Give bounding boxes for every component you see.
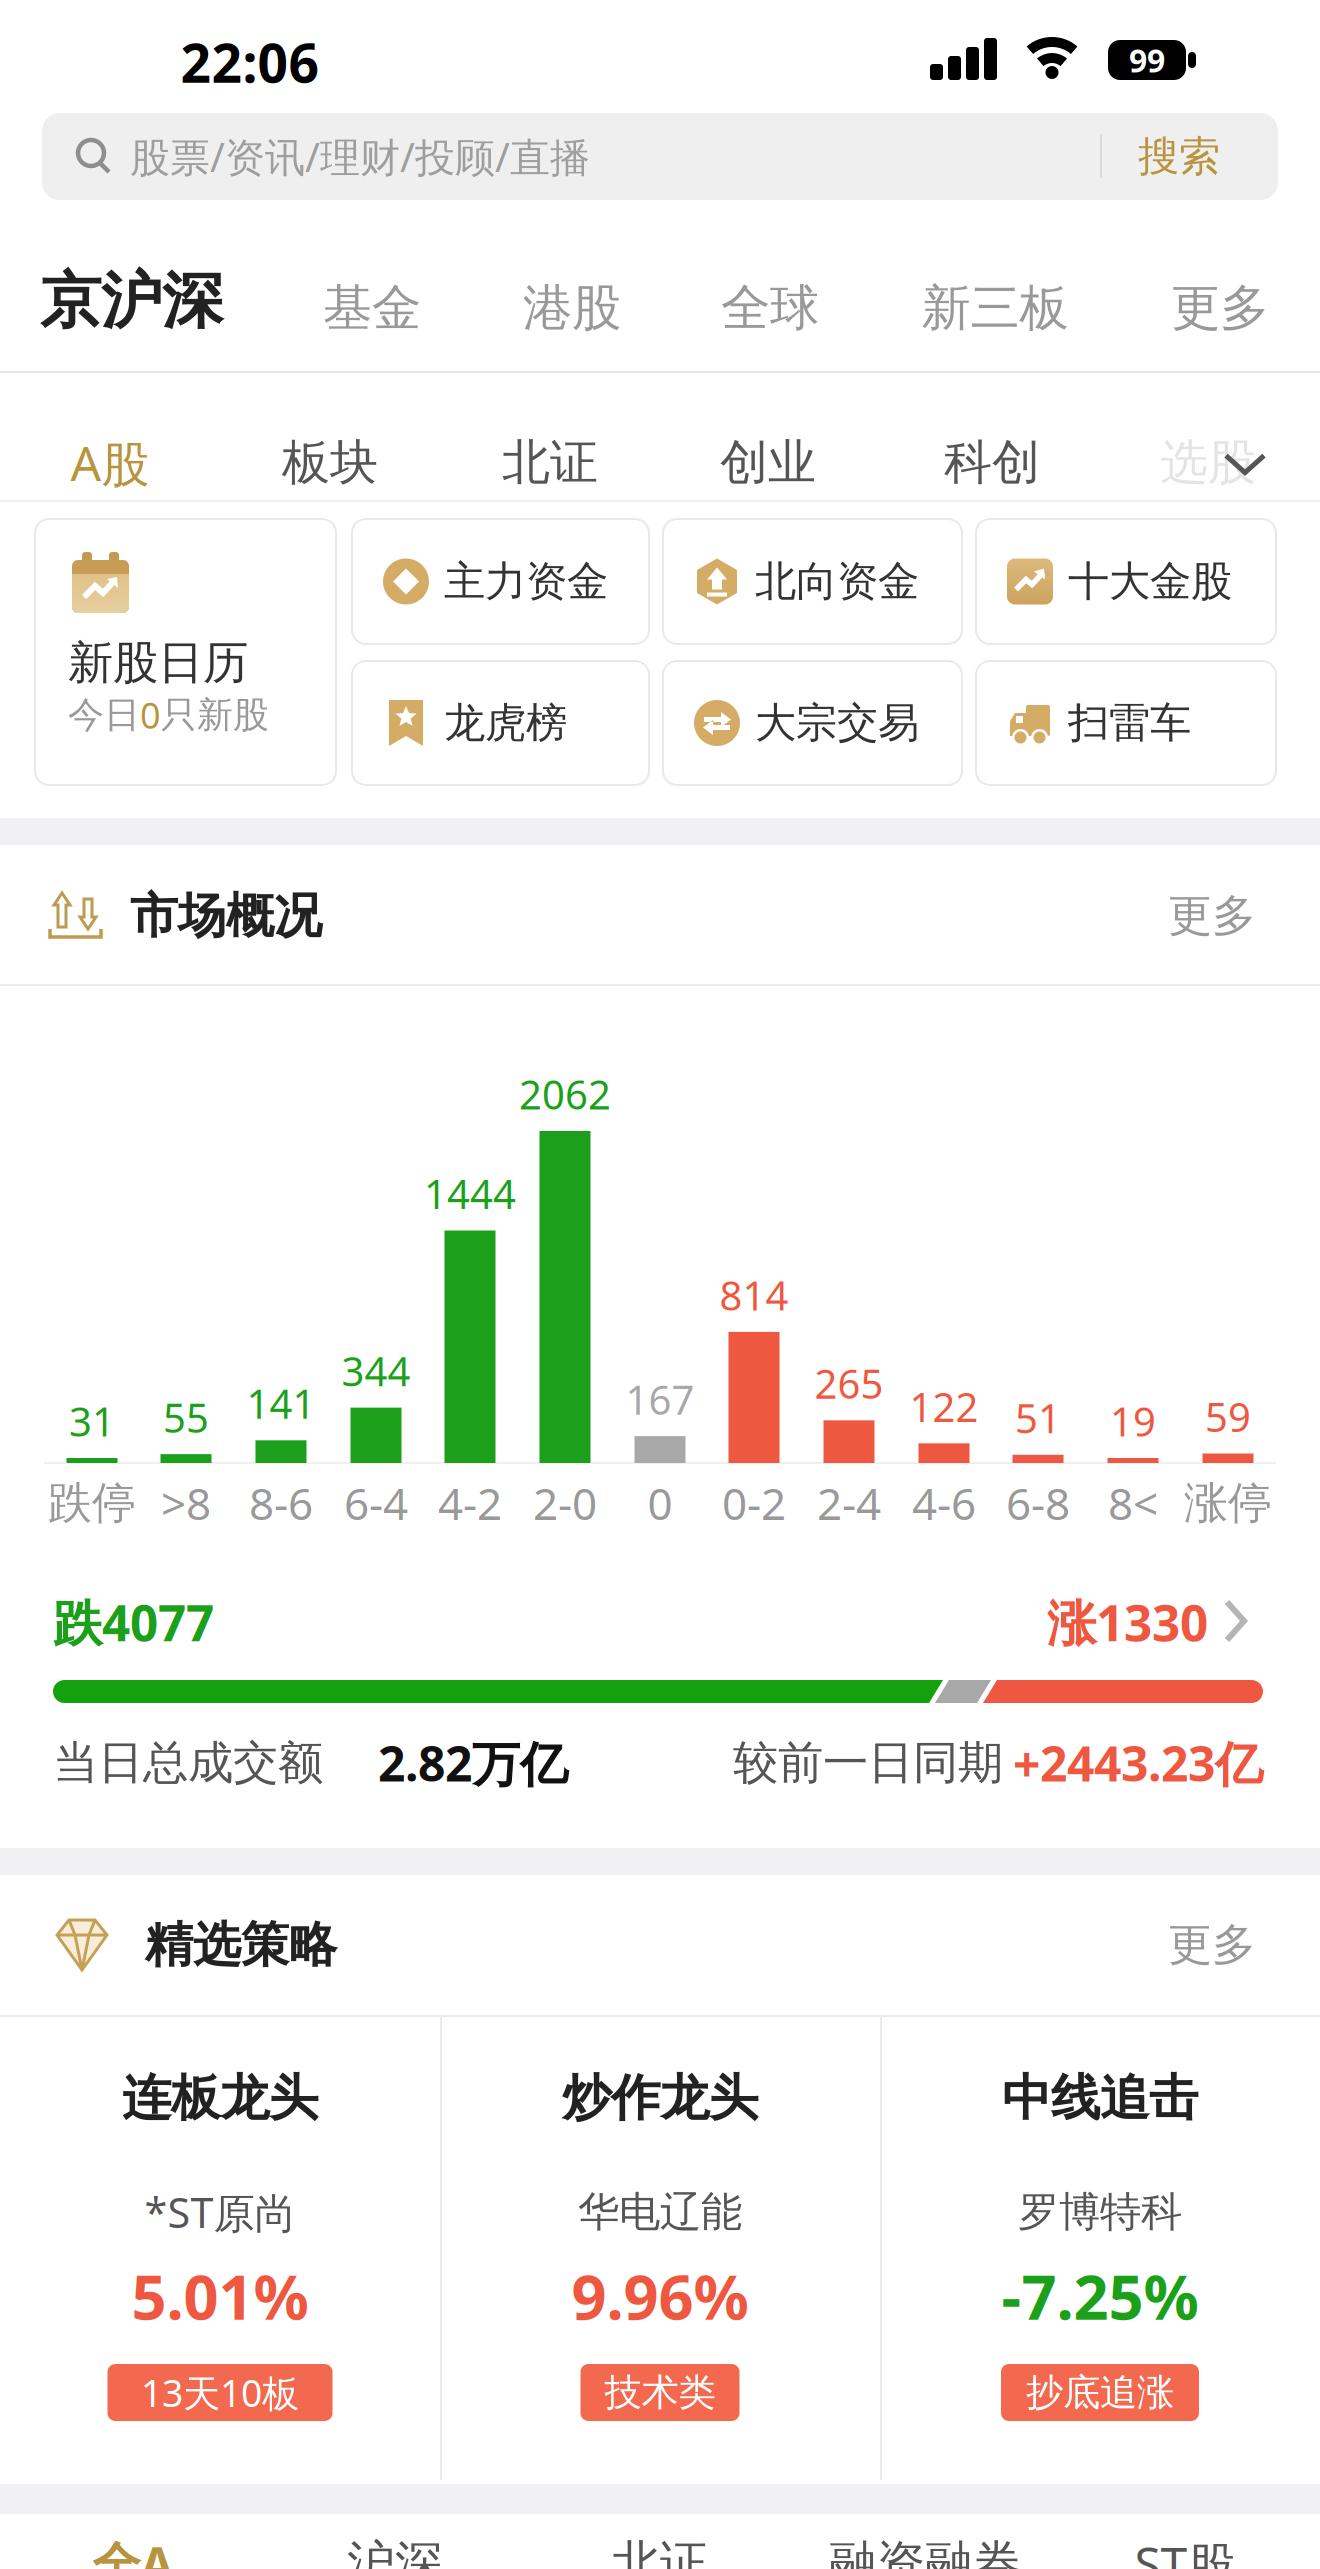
button[interactable]: 选股 <box>1128 373 1288 501</box>
staticText: 基金 <box>323 278 421 338</box>
staticText: 2-0 <box>533 1474 597 1532</box>
button[interactable]: 融资融券 <box>825 2502 1025 2569</box>
staticText: 2-4 <box>817 1474 881 1532</box>
staticText: 更多 <box>1168 889 1256 943</box>
staticText: 创业 <box>720 433 816 492</box>
button[interactable]: ST股 <box>1085 2502 1285 2569</box>
button[interactable]: 更多 <box>1152 881 1272 951</box>
staticText: -7.25% <box>1001 2255 1198 2337</box>
staticText: 搜索 <box>1138 131 1220 182</box>
staticText: 全球 <box>721 278 819 338</box>
button[interactable]: 新三板 <box>845 254 1145 348</box>
staticText: 跌4077 <box>53 1589 214 1655</box>
button[interactable]: 股票/资讯/理财/投顾/直播 <box>42 113 1278 200</box>
button[interactable]: 全球 <box>620 254 920 348</box>
staticText: 51 <box>1015 1391 1061 1444</box>
button[interactable]: 龙虎榜 <box>352 661 649 785</box>
staticText: 涨1330 <box>1047 1589 1208 1655</box>
staticText: 8< <box>1108 1474 1158 1532</box>
staticText: 较前一日同期 <box>733 1735 1003 1791</box>
staticText: 31 <box>69 1394 115 1447</box>
staticText: 新三板 <box>921 278 1068 338</box>
staticText: 更多 <box>1168 1918 1256 1972</box>
staticText: 6-8 <box>1006 1474 1070 1532</box>
staticText: 当日总成交额 <box>53 1735 337 1791</box>
staticText: 59 <box>1205 1390 1251 1443</box>
staticText: 北向资金 <box>755 556 919 607</box>
staticText: 5.01% <box>131 2255 308 2337</box>
staticText: 更多 <box>1171 278 1269 338</box>
staticText: >8 <box>161 1474 211 1532</box>
button[interactable]: 中线追击 <box>885 2020 1315 2480</box>
button[interactable]: 主力资金 <box>352 519 649 644</box>
staticText: 中线追击 <box>1002 2068 1198 2128</box>
staticText: 265 <box>814 1357 883 1410</box>
staticText: 8-6 <box>249 1474 313 1532</box>
button[interactable]: 基金 <box>222 254 522 348</box>
button[interactable]: 全A <box>33 2502 233 2569</box>
button[interactable]: 北证 <box>440 373 660 501</box>
button[interactable]: 北证 <box>560 2502 760 2569</box>
staticText: A股 <box>70 431 149 495</box>
button[interactable]: 板块 <box>220 373 440 501</box>
staticText: 板块 <box>282 433 378 492</box>
staticText: 融资融券 <box>829 2534 1021 2569</box>
staticText: 港股 <box>523 278 621 338</box>
button[interactable]: 十大金股 <box>976 519 1276 644</box>
staticText: 0 <box>647 1474 672 1532</box>
button[interactable]: 大宗交易 <box>663 661 962 785</box>
staticText: 华电辽能 <box>578 2187 742 2237</box>
staticText: ST股 <box>1134 2532 1235 2569</box>
staticText: 市场概况 <box>130 886 322 945</box>
staticText: 13天10板 <box>141 2368 299 2417</box>
staticText: 344 <box>341 1344 410 1397</box>
staticText: 0 <box>140 691 161 739</box>
staticText: 科创 <box>944 433 1040 492</box>
button[interactable]: 连板龙头 <box>5 2020 435 2480</box>
staticText: 2062 <box>519 1067 611 1120</box>
staticText: 2.82万亿 <box>378 1731 568 1795</box>
button[interactable]: 科创 <box>882 373 1102 501</box>
staticText: *ST原尚 <box>144 2184 295 2239</box>
staticText: 技术类 <box>604 2370 715 2415</box>
staticText: 大宗交易 <box>755 698 919 748</box>
staticText: 55 <box>163 1391 209 1444</box>
staticText: 涨停 <box>1184 1476 1272 1530</box>
staticText: 19 <box>1110 1394 1156 1447</box>
staticText: 选股 <box>1160 433 1256 492</box>
staticText: 主力资金 <box>444 556 608 607</box>
button[interactable]: 北向资金 <box>663 519 962 644</box>
staticText: 新股日历 <box>68 635 248 691</box>
staticText: 精选策略 <box>145 1915 337 1974</box>
button[interactable]: 炒作龙头 <box>445 2020 875 2480</box>
staticText: 4-2 <box>438 1474 502 1532</box>
staticText: 814 <box>719 1268 788 1321</box>
staticText: 只新股 <box>161 693 269 737</box>
staticText: 22:06 <box>180 27 319 97</box>
button[interactable]: 新股日历 <box>35 519 336 785</box>
button[interactable]: A股 <box>0 373 220 501</box>
staticText: 股票/资讯/理财/投顾/直播 <box>130 130 590 183</box>
button[interactable]: 扫雷车 <box>976 661 1276 785</box>
button[interactable]: 创业 <box>658 373 878 501</box>
button[interactable]: 更多 <box>1070 254 1320 348</box>
staticText: 北证 <box>612 2534 708 2569</box>
staticText: 4-6 <box>912 1474 976 1532</box>
staticText: 龙虎榜 <box>444 698 567 748</box>
button[interactable]: 更多 <box>1152 1910 1272 1980</box>
button[interactable]: 港股 <box>422 254 722 348</box>
button[interactable]: 沪深 <box>295 2502 495 2569</box>
staticText: 京沪深 <box>40 263 223 339</box>
button[interactable]: 涨1330 <box>1028 1587 1268 1657</box>
staticText: 全A <box>92 2532 173 2569</box>
staticText: 扫雷车 <box>1068 698 1191 748</box>
staticText: +2443.23亿 <box>1013 1731 1263 1795</box>
staticText: 9.96% <box>571 2255 748 2337</box>
staticText: 抄底追涨 <box>1026 2370 1174 2415</box>
staticText: 99 <box>1129 39 1165 81</box>
button[interactable]: 京沪深 <box>40 254 320 348</box>
staticText: 0-2 <box>722 1474 786 1532</box>
staticText: 北证 <box>502 433 598 492</box>
staticText: 沪深 <box>347 2534 443 2569</box>
staticText: 122 <box>909 1380 978 1433</box>
